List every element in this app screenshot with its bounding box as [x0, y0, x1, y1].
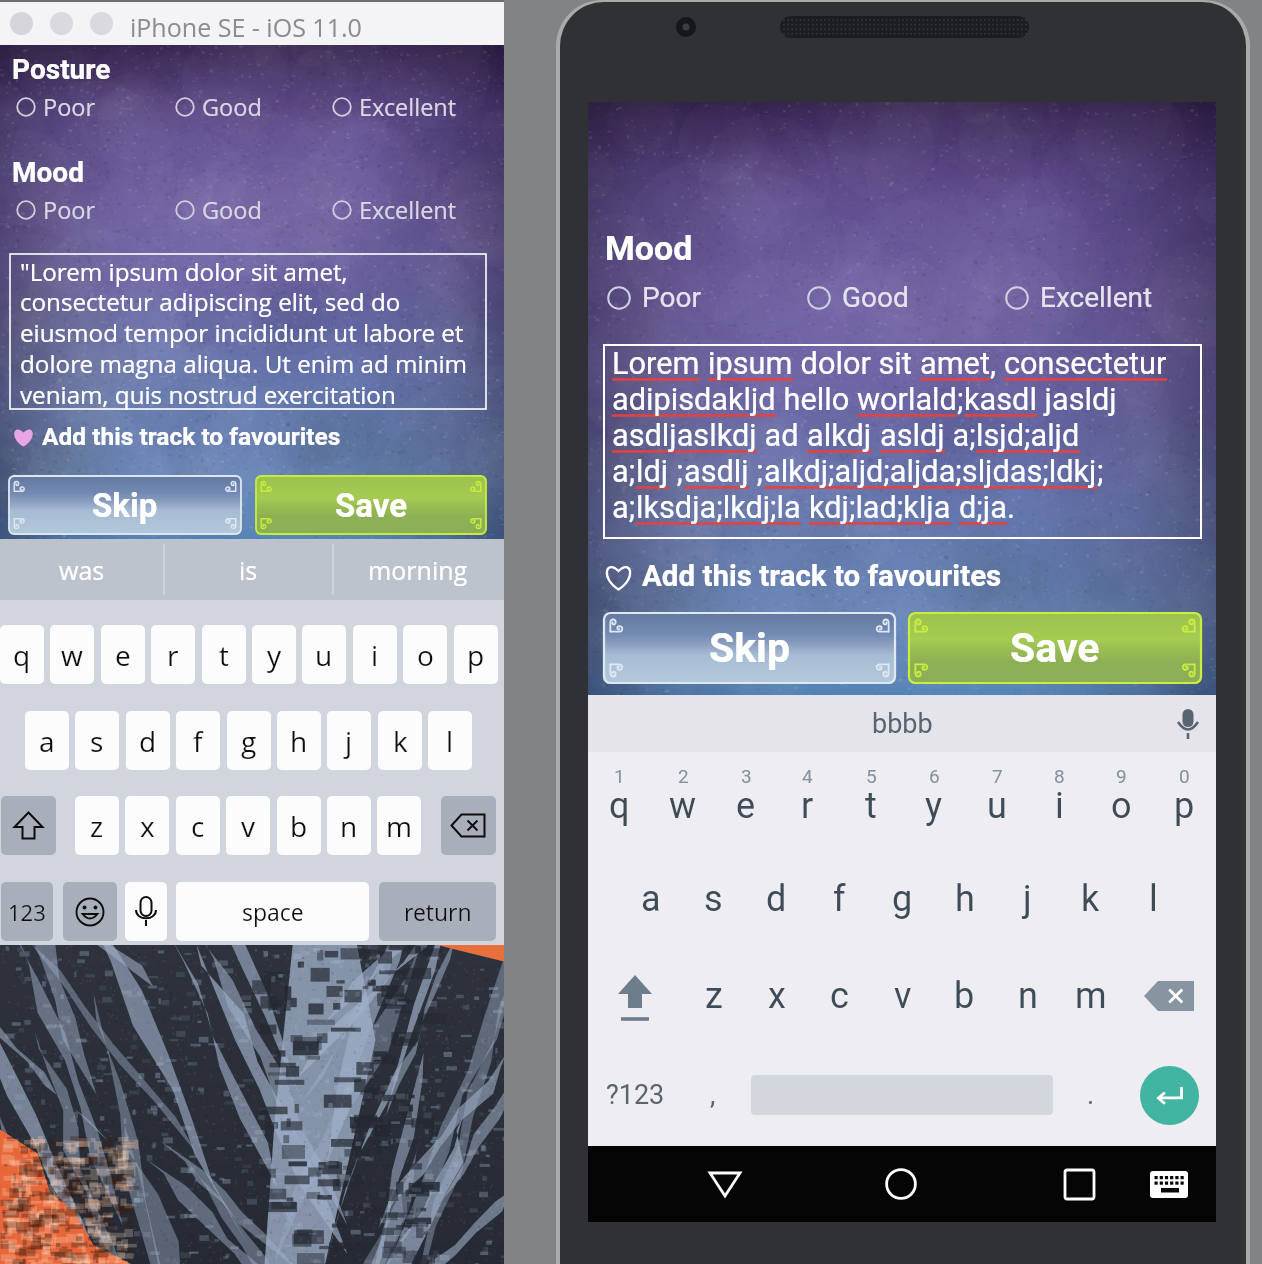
button[interactable]: f [176, 711, 220, 770]
button[interactable]: n [996, 947, 1059, 1044]
button[interactable]: z [682, 947, 745, 1044]
button[interactable]: Excellent [1005, 281, 1153, 314]
button[interactable]: Backspace [441, 796, 496, 855]
button[interactable]: u [302, 625, 346, 684]
button[interactable]: c [176, 796, 220, 855]
button[interactable]: p [454, 625, 498, 684]
button[interactable]: 1 [588, 752, 651, 850]
button[interactable]: l [428, 711, 472, 770]
button[interactable]: Save [256, 476, 486, 534]
button[interactable]: , [682, 1044, 744, 1146]
button[interactable]: m [377, 796, 421, 855]
button[interactable]: g [227, 711, 271, 770]
button[interactable]: Space [748, 1044, 1056, 1146]
button[interactable]: Good [175, 194, 262, 226]
staticText: Good [202, 194, 262, 226]
staticText: h [290, 722, 308, 760]
button[interactable]: s [682, 850, 745, 947]
button[interactable]: 6 [902, 752, 965, 850]
button[interactable]: 9 [1090, 752, 1153, 850]
button[interactable]: f [808, 850, 871, 947]
button[interactable]: 0 [1153, 752, 1216, 850]
button[interactable]: Shift [1, 796, 56, 855]
button[interactable]: j [327, 711, 371, 770]
staticText: Add this track to favourites [642, 559, 1002, 594]
button[interactable]: s [75, 711, 119, 770]
button[interactable]: h [933, 850, 996, 947]
button[interactable]: Skip [9, 476, 241, 534]
staticText: Lorem [612, 346, 700, 382]
button[interactable]: Good [175, 91, 262, 123]
button[interactable]: n [327, 796, 371, 855]
button[interactable]: l [1122, 850, 1185, 947]
button[interactable]: z [75, 796, 119, 855]
button[interactable]: 123 [1, 882, 53, 941]
button[interactable]: Good [807, 281, 909, 314]
button[interactable]: m [1059, 947, 1122, 1044]
button[interactable]: was [0, 539, 164, 600]
staticText: Add this track to favourites [42, 422, 341, 451]
button[interactable]: 4 [776, 752, 839, 850]
button[interactable]: Enter [1122, 1044, 1216, 1146]
button[interactable]: Switch keyboard [1139, 1146, 1199, 1222]
button[interactable]: Skip [604, 613, 895, 683]
button[interactable]: v [226, 796, 270, 855]
button[interactable]: o [403, 625, 447, 684]
button[interactable]: q [0, 625, 44, 684]
button[interactable]: 5 [839, 752, 902, 850]
button[interactable]: t [202, 625, 246, 684]
staticText: kasdl [964, 382, 1037, 418]
button[interactable]: space [176, 882, 369, 941]
button[interactable]: Voice input [1168, 695, 1208, 752]
button[interactable]: Excellent [332, 194, 457, 226]
button[interactable]: 8 [1028, 752, 1091, 850]
button[interactable]: i [353, 625, 397, 684]
button[interactable]: k [378, 711, 422, 770]
button[interactable]: Excellent [332, 91, 457, 123]
button[interactable]: Home [871, 1146, 931, 1222]
button[interactable]: b [277, 796, 321, 855]
button[interactable]: k [1059, 850, 1122, 947]
button[interactable]: b [933, 947, 996, 1044]
button[interactable]: Add this track to favourites [604, 559, 1002, 594]
button[interactable]: a [619, 850, 682, 947]
button[interactable]: d [745, 850, 808, 947]
button[interactable]: e [101, 625, 145, 684]
button[interactable]: Zoom [90, 12, 113, 35]
button[interactable]: a [25, 711, 69, 770]
button[interactable]: x [125, 796, 169, 855]
button[interactable]: Poor [607, 281, 701, 314]
button[interactable]: Save [909, 613, 1201, 683]
button[interactable]: Recents [1049, 1146, 1109, 1222]
button[interactable]: y [252, 625, 296, 684]
staticText: space [242, 896, 304, 927]
button[interactable]: ?123 [588, 1044, 682, 1146]
button[interactable]: r [151, 625, 195, 684]
button[interactable]: g [871, 850, 934, 947]
button[interactable]: morning [333, 539, 502, 600]
button[interactable]: Emoji keyboard [63, 882, 117, 941]
button[interactable]: Poor [16, 91, 96, 123]
button[interactable]: h [277, 711, 321, 770]
button[interactable]: w [50, 625, 94, 684]
button[interactable]: Backspace [1122, 947, 1216, 1044]
button[interactable]: is [164, 539, 333, 600]
button[interactable]: 3 [714, 752, 777, 850]
button[interactable]: Close [10, 12, 33, 35]
button[interactable]: 7 [965, 752, 1028, 850]
button[interactable]: return [379, 882, 496, 941]
button[interactable]: v [871, 947, 934, 1044]
button[interactable]: x [745, 947, 808, 1044]
button[interactable]: Poor [16, 194, 96, 226]
button[interactable]: c [808, 947, 871, 1044]
button[interactable]: Add this track to favourites [12, 422, 341, 451]
button[interactable]: Minimise [50, 12, 73, 35]
button[interactable]: d [126, 711, 170, 770]
staticText: is [239, 553, 258, 587]
button[interactable]: 2 [651, 752, 714, 850]
button[interactable]: Shift [588, 947, 682, 1044]
button[interactable]: Back [695, 1146, 755, 1222]
button[interactable]: j [996, 850, 1059, 947]
button[interactable]: . [1060, 1044, 1122, 1146]
button[interactable]: Dictation [125, 882, 167, 941]
